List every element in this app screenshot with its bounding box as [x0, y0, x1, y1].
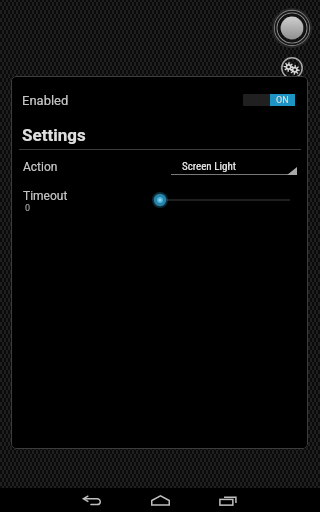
staticText: Screen Light — [182, 160, 236, 173]
staticText: 0 — [25, 203, 31, 214]
button[interactable]: Enabled — [11, 76, 308, 118]
staticText: Settings — [22, 125, 86, 145]
button[interactable]: Home — [137, 488, 183, 512]
button[interactable]: Recent apps — [205, 488, 251, 512]
staticText: Timeout — [23, 189, 68, 203]
button[interactable]: Back — [69, 488, 115, 512]
button[interactable]: Action — [11, 156, 308, 182]
staticText: Enabled — [22, 93, 69, 108]
staticText: Action — [23, 160, 58, 174]
button[interactable]: Settings — [280, 56, 304, 80]
button[interactable]: Power — [272, 8, 312, 48]
staticText: ON — [276, 95, 289, 106]
